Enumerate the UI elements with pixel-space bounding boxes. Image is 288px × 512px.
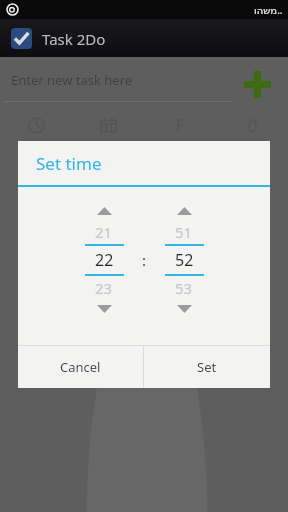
button[interactable]: Set	[144, 346, 270, 388]
staticText: 51	[175, 222, 193, 242]
staticText: Enter new task here	[11, 71, 133, 89]
staticText: 23	[95, 278, 113, 298]
button[interactable]: Add task	[240, 67, 274, 101]
staticText: Set	[197, 358, 217, 376]
staticText: Cancel	[60, 358, 101, 376]
button[interactable]: Cancel	[18, 346, 143, 388]
button[interactable]: Decrease hour	[77, 300, 131, 318]
button[interactable]: Increase hour	[77, 202, 131, 220]
staticText: Task 2Do	[42, 29, 106, 49]
staticText: 21	[95, 222, 113, 242]
staticText: 52	[175, 249, 194, 271]
button[interactable]: Decrease minute	[157, 300, 211, 318]
staticText: 22	[95, 249, 114, 271]
button[interactable]: Increase minute	[157, 202, 211, 220]
staticText: Set time	[36, 152, 102, 175]
staticText: משהו..	[254, 3, 283, 17]
staticText: 53	[175, 278, 193, 298]
staticText: :	[142, 250, 147, 270]
